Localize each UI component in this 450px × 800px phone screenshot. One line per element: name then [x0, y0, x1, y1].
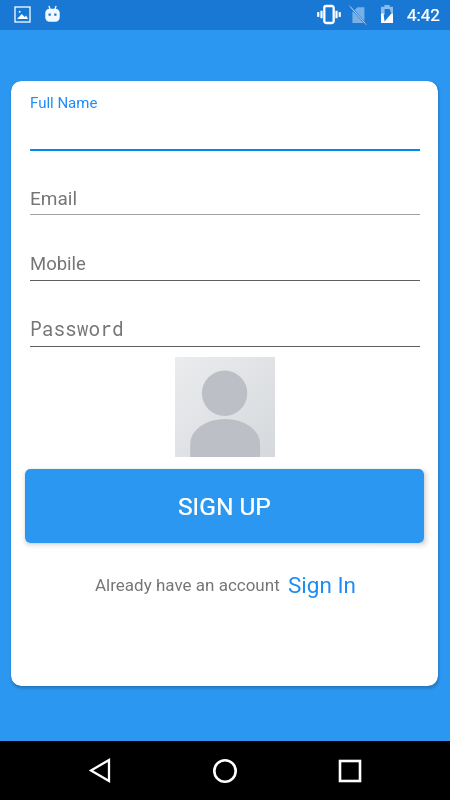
other: No SIM card: [350, 6, 366, 24]
staticText: SIGN UP: [178, 492, 271, 521]
button[interactable]: Back: [75, 741, 125, 800]
staticText: Password: [30, 316, 124, 342]
other: Vibrate: [317, 6, 341, 23]
button[interactable]: SIGN UP: [25, 469, 424, 543]
other: System: [45, 5, 60, 22]
staticText: Already have an account: [95, 575, 280, 595]
button[interactable]: Home: [200, 741, 250, 800]
staticText: 4:42: [407, 5, 440, 25]
other: Battery charging: [381, 5, 393, 23]
staticText: Email: [30, 187, 78, 209]
button[interactable]: Recents: [325, 741, 375, 800]
staticText: Mobile: [30, 253, 86, 275]
other: Screenshot: [15, 7, 30, 22]
staticText: Sign In: [288, 572, 357, 598]
staticText: Full Name: [30, 94, 98, 112]
button[interactable]: Sign In: [288, 572, 357, 598]
